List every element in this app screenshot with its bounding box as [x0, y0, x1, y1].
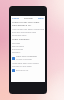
- button[interactable]: Bloom & Co.: [12, 69, 44, 72]
- staticText: Eucalyptus: [12, 48, 24, 51]
- button[interactable]: Cancel: [12, 17, 20, 20]
- staticText: Send: [38, 17, 44, 20]
- staticText: Arrives Thursday: [16, 58, 32, 61]
- button[interactable]: Send: [38, 17, 44, 20]
- staticText: Delivery: [12, 51, 21, 54]
- staticText: Preview: [24, 17, 33, 20]
- staticText: Thank you for your order from Bloom & Co…: [12, 21, 44, 27]
- staticText: Bloom & Co.: [16, 69, 29, 72]
- staticText: Order summary: [12, 38, 30, 41]
- staticText: Need help with your order? Contact us an…: [12, 62, 44, 68]
- button[interactable]: Track your shipment: [12, 55, 44, 61]
- staticText: Cancel: [12, 17, 20, 20]
- staticText: Ranunculus: [12, 45, 25, 48]
- staticText: Your order has been confirmed and will s…: [12, 28, 44, 37]
- staticText: Peonies: [12, 42, 21, 45]
- staticText: Track your shipment: [16, 55, 37, 58]
